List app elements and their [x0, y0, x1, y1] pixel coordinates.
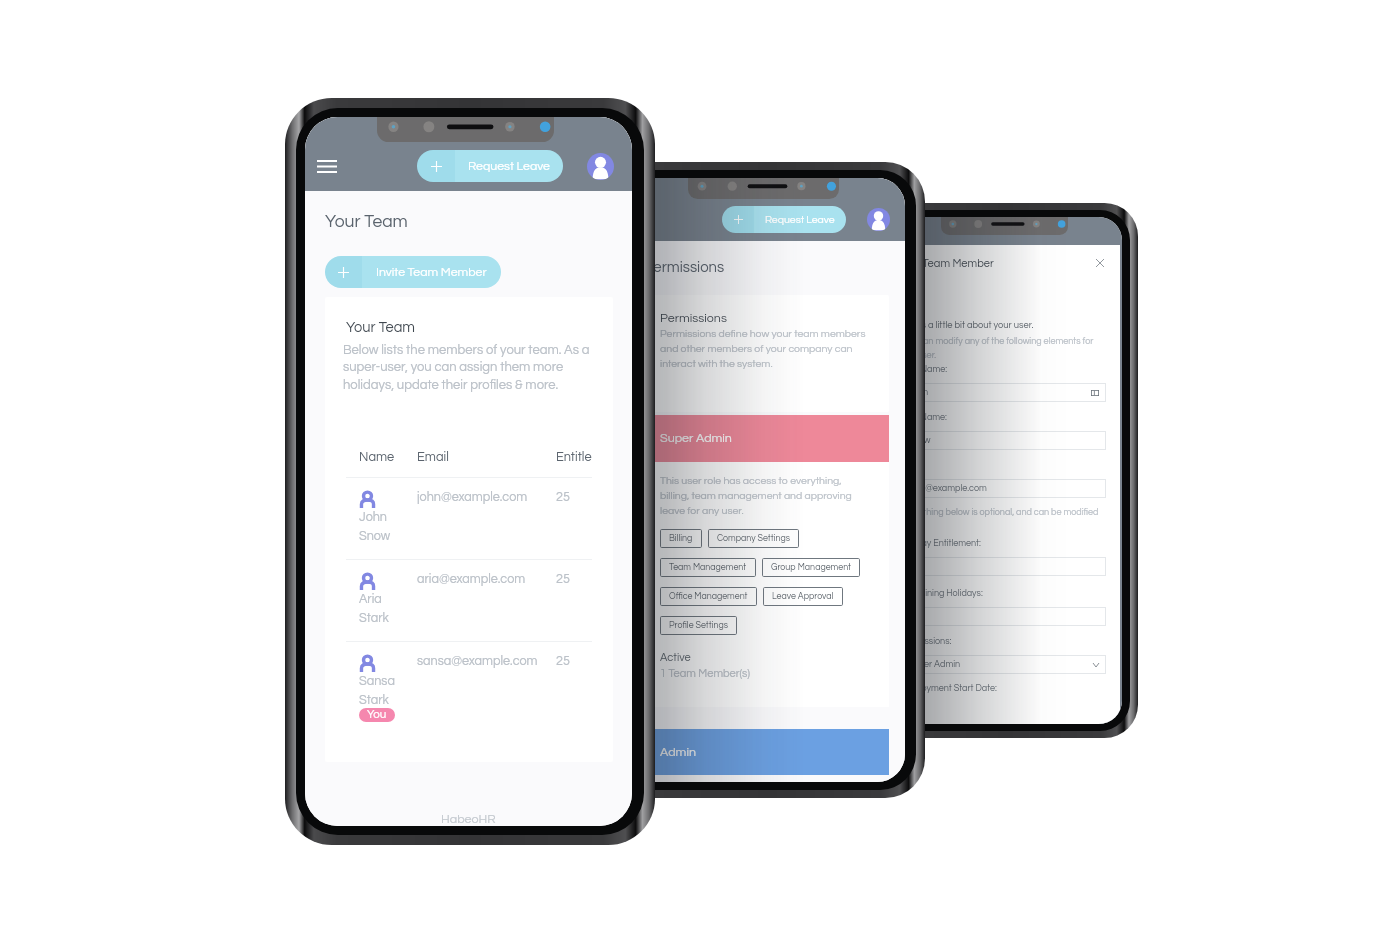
staticText: 25 — [556, 655, 592, 668]
staticText: You can modify any of the following elem… — [901, 337, 1106, 360]
staticText: Leave Approval — [772, 592, 834, 601]
button[interactable]: Super Admin — [901, 655, 1106, 674]
staticText: john@example.com — [908, 484, 1099, 493]
staticText: sansa@example.com — [417, 655, 543, 668]
button[interactable]: Request Leave — [722, 206, 846, 233]
staticText: Invite Team Member — [376, 266, 487, 279]
staticText: HabeoHR — [441, 813, 496, 826]
staticText: Company Settings — [717, 534, 790, 543]
button[interactable]: Invite Team Member — [325, 256, 501, 288]
staticText: 1 Team Member(s) — [660, 668, 750, 679]
button[interactable]: Group Management — [762, 558, 860, 577]
staticText: 25 — [556, 491, 592, 504]
button[interactable]: Account — [587, 153, 614, 180]
staticText: Permissions: — [901, 637, 952, 646]
staticText: You — [367, 709, 387, 721]
staticText: Employment Start Date: — [901, 684, 997, 693]
staticText: Team Management — [669, 563, 747, 572]
staticText: Aria Stark — [359, 593, 389, 624]
staticText: Sansa Stark — [359, 675, 395, 706]
button[interactable]: Super Admin — [644, 415, 889, 462]
button[interactable]: Admin — [644, 729, 889, 775]
staticText: Tell us a little bit about your user. — [901, 320, 1034, 330]
staticText: Your Team — [325, 213, 408, 231]
button[interactable]: You — [359, 708, 395, 722]
button[interactable]: Office Management — [660, 587, 757, 606]
staticText: Super Admin — [908, 660, 1093, 669]
button[interactable]: Leave Approval — [763, 587, 843, 606]
button[interactable]: 23.0 — [901, 607, 1106, 626]
staticText: Below lists the members of your team. As… — [343, 343, 595, 392]
staticText: Profile Settings — [669, 621, 728, 630]
staticText: Admin — [660, 746, 696, 759]
staticText: Remaining Holidays: — [901, 589, 983, 598]
button[interactable]: Open navigation menu — [317, 153, 337, 179]
staticText: Group Management — [771, 563, 851, 572]
staticText: First Name: — [901, 365, 948, 374]
staticText: Your Team — [346, 320, 416, 335]
button[interactable]: Request Leave — [417, 150, 563, 182]
staticText: John — [908, 388, 1091, 397]
button[interactable]: Team Management — [660, 558, 756, 577]
button[interactable]: Account — [867, 208, 890, 231]
staticText: Super Admin — [660, 432, 732, 445]
staticText: 23.0 — [908, 612, 1099, 621]
staticText: Last Name: — [901, 413, 947, 422]
button[interactable]: 25.0 — [901, 557, 1106, 576]
staticText: Request Leave — [765, 214, 835, 225]
staticText: Holiday Entitlement: — [901, 539, 981, 548]
staticText: john@example.com — [417, 491, 543, 504]
staticText: aria@example.com — [417, 573, 543, 586]
button[interactable]: john@example.com — [901, 479, 1106, 498]
staticText: Office Management — [669, 592, 748, 601]
button[interactable]: Profile Settings — [660, 616, 737, 635]
staticText: John Snow — [359, 511, 391, 542]
button[interactable]: Open navigation menu — [637, 209, 654, 231]
button[interactable]: Snow — [901, 431, 1106, 450]
staticText: Permissions — [644, 260, 725, 275]
staticText: Email: — [901, 461, 926, 470]
staticText: Active — [660, 652, 691, 663]
staticText: Name — [359, 451, 404, 464]
staticText: Snow — [908, 436, 1099, 445]
staticText: Edit Team Member — [901, 258, 1092, 269]
button[interactable]: John — [901, 383, 1106, 402]
staticText: Email — [417, 451, 543, 464]
other: Team member — [359, 573, 376, 590]
button[interactable]: Billing — [660, 529, 702, 548]
button[interactable]: Close — [1092, 255, 1108, 271]
button[interactable]: Company Settings — [708, 529, 799, 548]
staticText: Permissions define how your team members… — [660, 328, 869, 369]
staticText: This user role has access to everything,… — [660, 475, 869, 516]
staticText: Billing — [669, 534, 693, 543]
staticText: Permissions — [660, 312, 727, 325]
staticText: Entitlement — [556, 451, 592, 464]
staticText: Request Leave — [468, 160, 550, 173]
staticText: 25 — [556, 573, 592, 586]
staticText: 25.0 — [908, 562, 1099, 571]
staticText: Everything below is optional, and can be… — [901, 508, 1106, 531]
other: Team member — [359, 491, 376, 508]
other: Team member — [359, 655, 376, 672]
